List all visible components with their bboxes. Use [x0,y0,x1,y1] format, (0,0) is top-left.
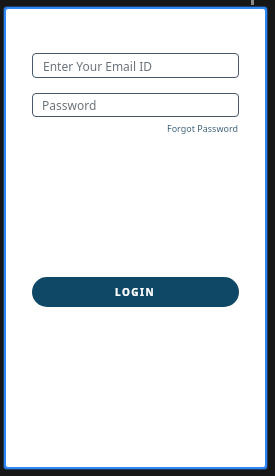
button[interactable]: Forgot Password [167,122,239,134]
button[interactable]: Enter Your Email ID [32,53,239,78]
staticText: LOGIN [115,285,156,299]
button[interactable]: Password [32,93,239,117]
staticText: Enter Your Email ID [43,58,152,74]
button[interactable]: LOGIN [32,277,239,307]
staticText: Password [42,97,97,113]
